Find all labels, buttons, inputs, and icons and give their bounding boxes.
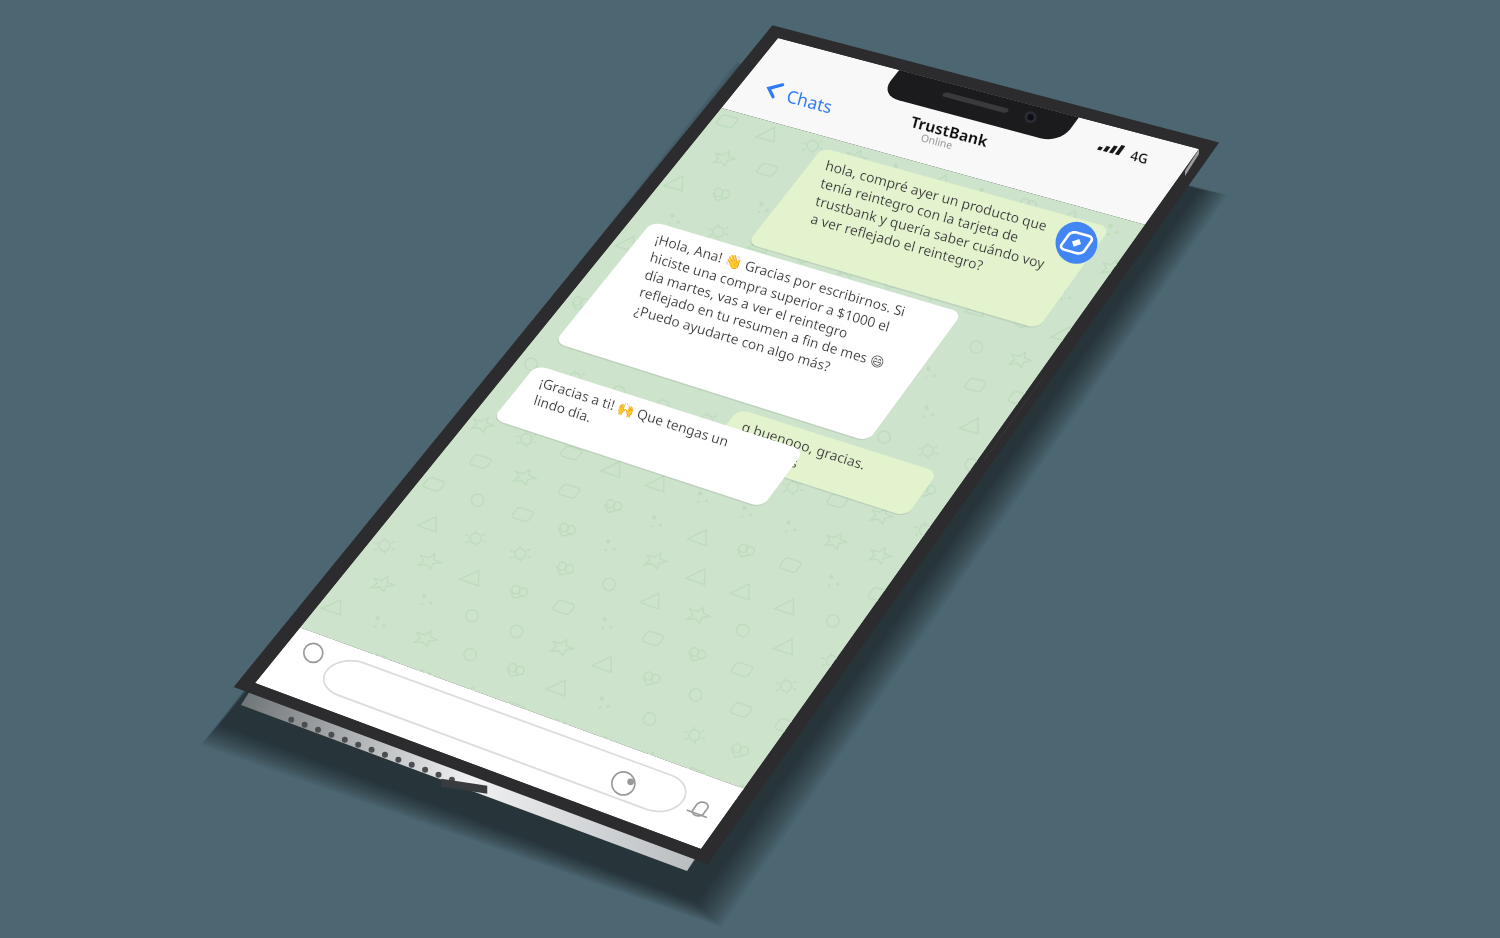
button[interactable]: WhatsApp chat with TrustBank on iPhone (0, 0, 1500, 938)
